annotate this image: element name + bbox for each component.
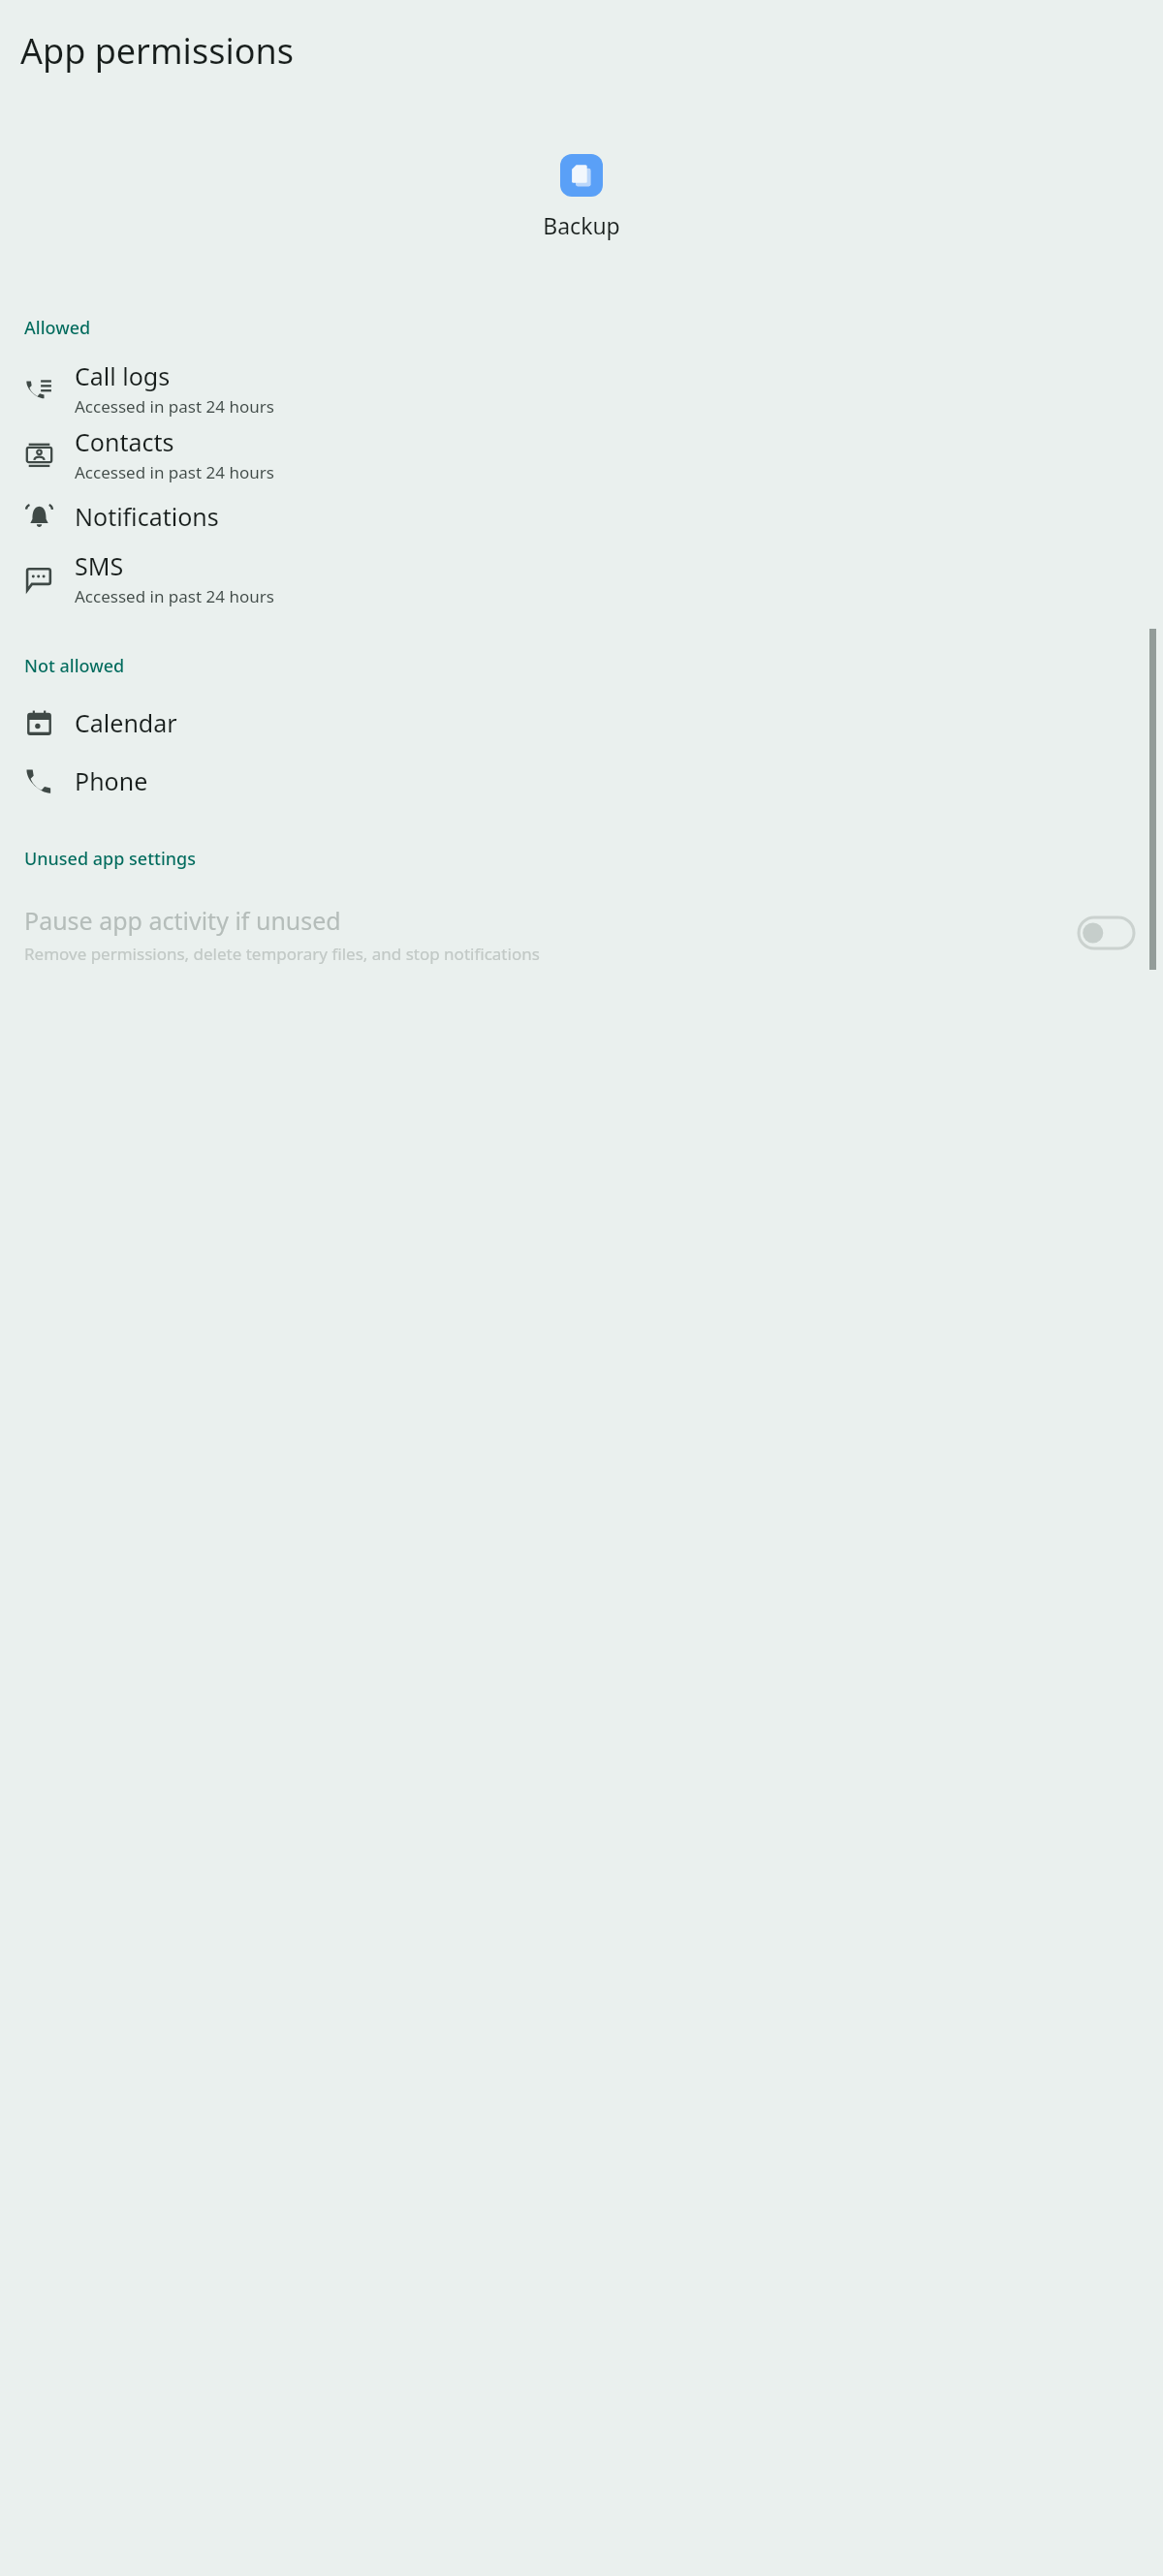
staticText: Call logs [75, 359, 171, 392]
button[interactable]: Calendar [0, 694, 1163, 752]
staticText: Allowed [24, 316, 91, 340]
staticText: Accessed in past 24 hours [75, 585, 274, 607]
staticText: Pause app activity if unused [24, 904, 341, 937]
button[interactable]: Call logs [0, 356, 1163, 421]
staticText: Contacts [75, 425, 174, 458]
staticText: SMS [75, 549, 124, 582]
staticText: Accessed in past 24 hours [75, 461, 274, 483]
staticText: Not allowed [24, 654, 125, 678]
staticText: Calendar [75, 706, 177, 739]
button[interactable]: Contacts [0, 421, 1163, 487]
staticText: Phone [75, 764, 148, 797]
staticText: Remove permissions, delete temporary fil… [24, 943, 540, 965]
staticText: Notifications [75, 500, 219, 533]
button[interactable]: Phone [0, 752, 1163, 810]
staticText: Accessed in past 24 hours [75, 395, 274, 418]
staticText: Backup [543, 210, 620, 240]
button[interactable]: Pause app activity toggle [1079, 917, 1134, 948]
staticText: Unused app settings [24, 847, 196, 871]
button[interactable]: Pause app activity if unused [0, 898, 1163, 975]
button[interactable]: SMS [0, 545, 1163, 611]
button[interactable]: Notifications [0, 487, 1163, 545]
staticText: App permissions [20, 27, 294, 75]
